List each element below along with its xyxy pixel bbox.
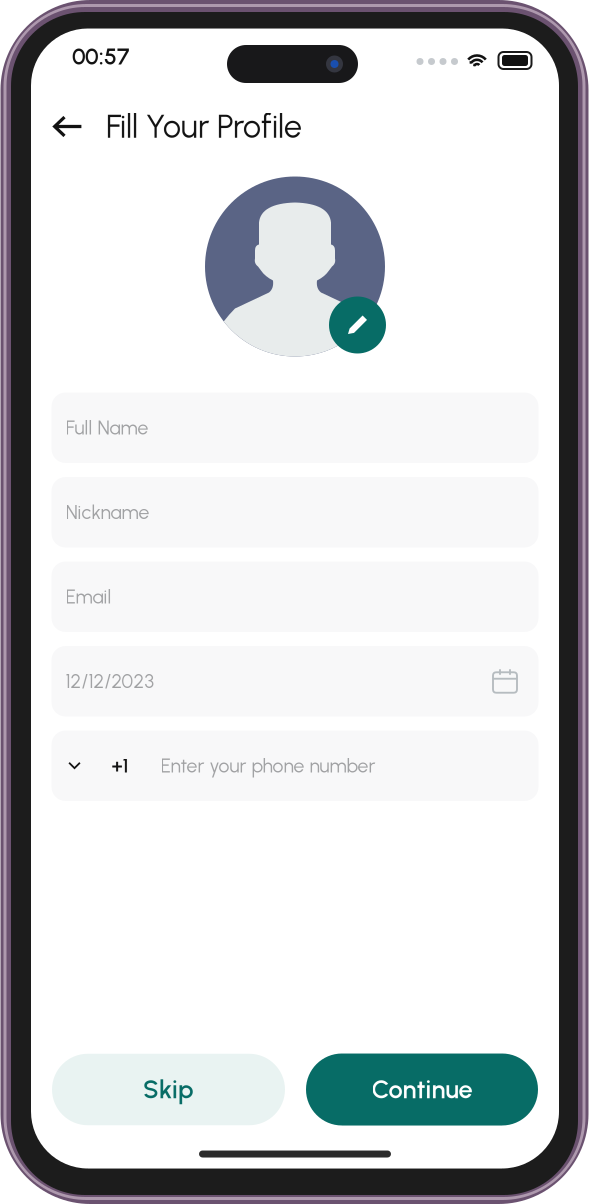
button[interactable]: Skip: [52, 1054, 285, 1125]
button[interactable]: Edit photo: [329, 296, 386, 353]
staticText: +1: [111, 754, 128, 777]
staticText: Skip: [143, 1074, 194, 1105]
staticText: Nickname: [65, 501, 149, 524]
staticText: Email: [65, 585, 111, 608]
staticText: Full Name: [65, 416, 148, 439]
staticText: 00:57: [72, 43, 129, 70]
staticText: Continue: [371, 1074, 472, 1105]
staticText: 12/12/2023: [65, 670, 154, 693]
button[interactable]: Back: [53, 104, 83, 148]
staticText: Enter your phone number: [160, 754, 375, 777]
staticText: Fill Your Profile: [106, 107, 302, 146]
button[interactable]: Continue: [306, 1053, 538, 1125]
